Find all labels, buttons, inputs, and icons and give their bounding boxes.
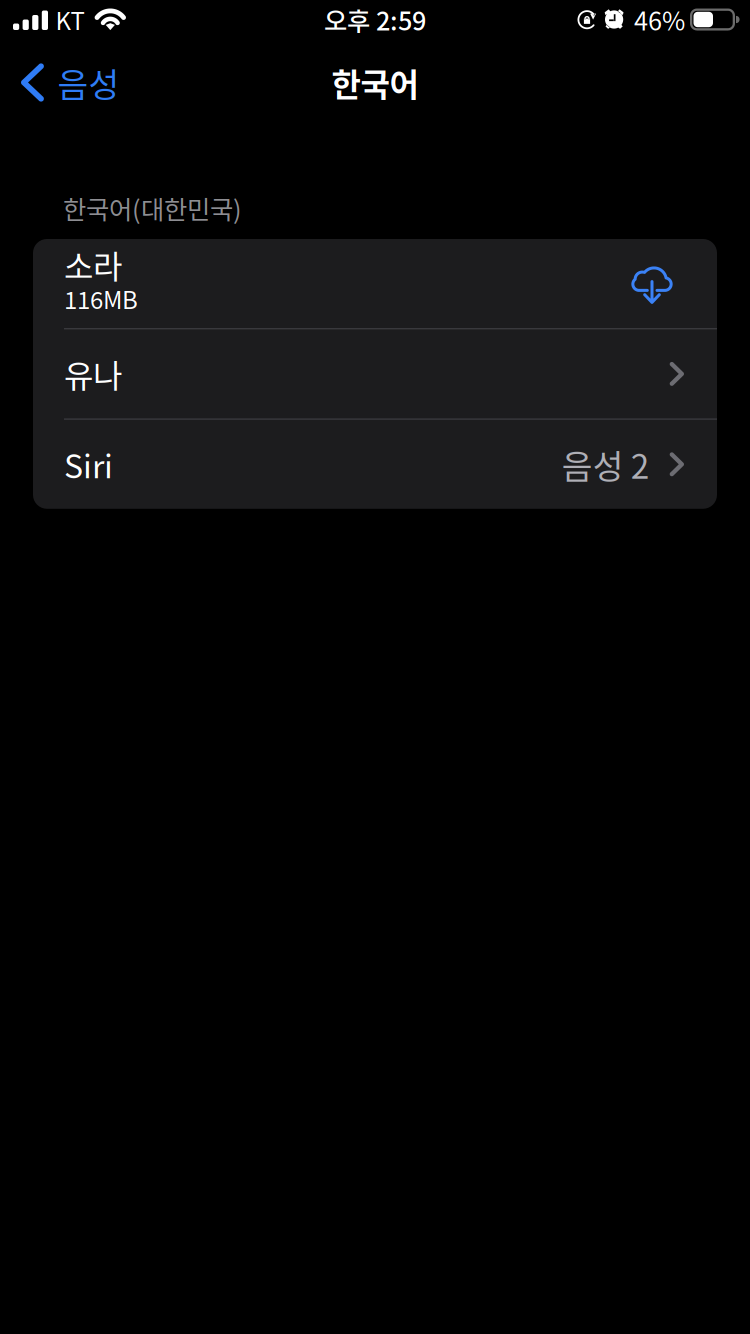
- button[interactable]: 유나: [33, 329, 717, 418]
- button[interactable]: 음성: [0, 44, 131, 121]
- staticText: 116MB: [64, 281, 138, 316]
- staticText: KT: [55, 2, 84, 37]
- staticText: 오후 2:59: [324, 1, 426, 38]
- staticText: 한국어(대한민국): [63, 190, 242, 226]
- staticText: Siri: [64, 441, 113, 487]
- staticText: 음성: [57, 58, 119, 107]
- staticText: 소라: [64, 241, 122, 288]
- staticText: 46%: [634, 1, 685, 38]
- staticText: 한국어: [331, 59, 418, 106]
- staticText: 유나: [64, 351, 122, 397]
- staticText: 음성 2: [562, 440, 650, 488]
- button[interactable]: 소라: [33, 239, 717, 328]
- button[interactable]: Siri: [33, 420, 717, 509]
